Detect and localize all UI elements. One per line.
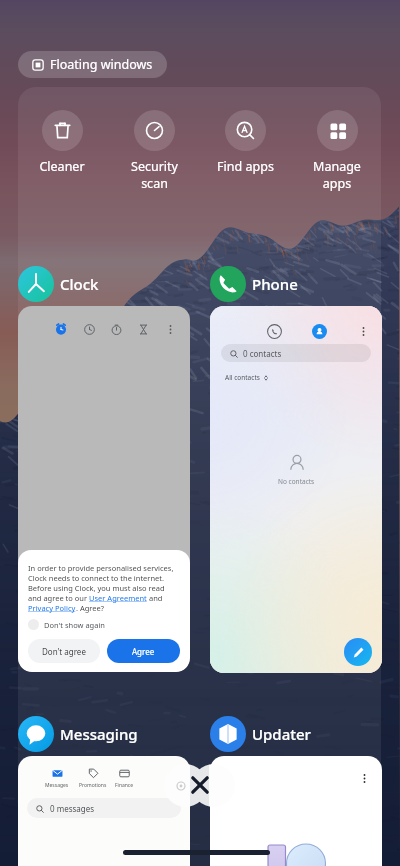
button[interactable]: Agree (107, 639, 180, 663)
staticText: Messaging (60, 724, 138, 744)
button[interactable]: In order to provide personalised service… (18, 306, 190, 672)
staticText: User Agreement (89, 593, 147, 603)
staticText: Manage apps (313, 158, 361, 191)
button[interactable]: Clock (18, 266, 99, 302)
button[interactable]: Messages (18, 756, 190, 866)
staticText: Agree (132, 646, 155, 657)
staticText: Privacy Policy (28, 603, 76, 613)
button[interactable]: All contacts (225, 373, 269, 382)
button[interactable]: Floating windows (18, 51, 167, 78)
button[interactable]: 0 messages (27, 798, 181, 818)
button[interactable]: Don't agree (28, 639, 100, 663)
button[interactable]: Find apps (204, 110, 286, 175)
staticText: and agree to our (28, 593, 89, 603)
button[interactable]: Close all (188, 773, 212, 797)
staticText: Cleaner (39, 158, 85, 175)
button[interactable]: Messaging (18, 716, 138, 752)
staticText: 0 contacts (243, 348, 282, 359)
button[interactable]: Cleaner (21, 110, 103, 175)
staticText: Clock needs to connect to the internet. (28, 573, 165, 583)
staticText: Promotions (79, 782, 107, 789)
button[interactable]: Messages (45, 768, 69, 789)
staticText: Clock (60, 274, 99, 294)
staticText: and (147, 593, 163, 603)
staticText: Phone (252, 274, 298, 294)
staticText: Messages (45, 782, 69, 789)
staticText: In order to provide personalised service… (28, 563, 174, 573)
staticText: Finance (115, 782, 134, 789)
staticText: All contacts (225, 373, 260, 382)
button[interactable]: Finance (115, 768, 134, 789)
staticText: Don't agree (42, 646, 86, 657)
button[interactable]: Close (192, 764, 235, 807)
button[interactable]: Promotions (79, 768, 107, 789)
button[interactable]: Manage apps (296, 110, 378, 191)
button[interactable]: New contact (344, 638, 372, 666)
staticText: 0 messages (50, 803, 95, 814)
button[interactable]: More options (210, 756, 382, 866)
button[interactable]: 0 contacts (221, 344, 371, 362)
staticText: Don't show again (44, 620, 105, 630)
staticText: . Agree? (76, 603, 105, 613)
staticText: No contacts (278, 477, 315, 486)
button[interactable]: Don't show again (28, 619, 105, 630)
button[interactable]: App info (164, 764, 207, 807)
staticText: Floating windows (50, 56, 153, 73)
staticText: Updater (252, 724, 311, 744)
staticText: Find apps (217, 158, 274, 175)
button[interactable]: Updater (210, 716, 311, 752)
staticText: Before using Clock, you must also read (28, 583, 165, 593)
button[interactable]: Security scan (113, 110, 195, 191)
button[interactable]: Phone (210, 266, 298, 302)
staticText: Security scan (131, 158, 178, 191)
button[interactable]: 0 contacts (210, 306, 382, 673)
button[interactable]: More options (359, 773, 370, 784)
